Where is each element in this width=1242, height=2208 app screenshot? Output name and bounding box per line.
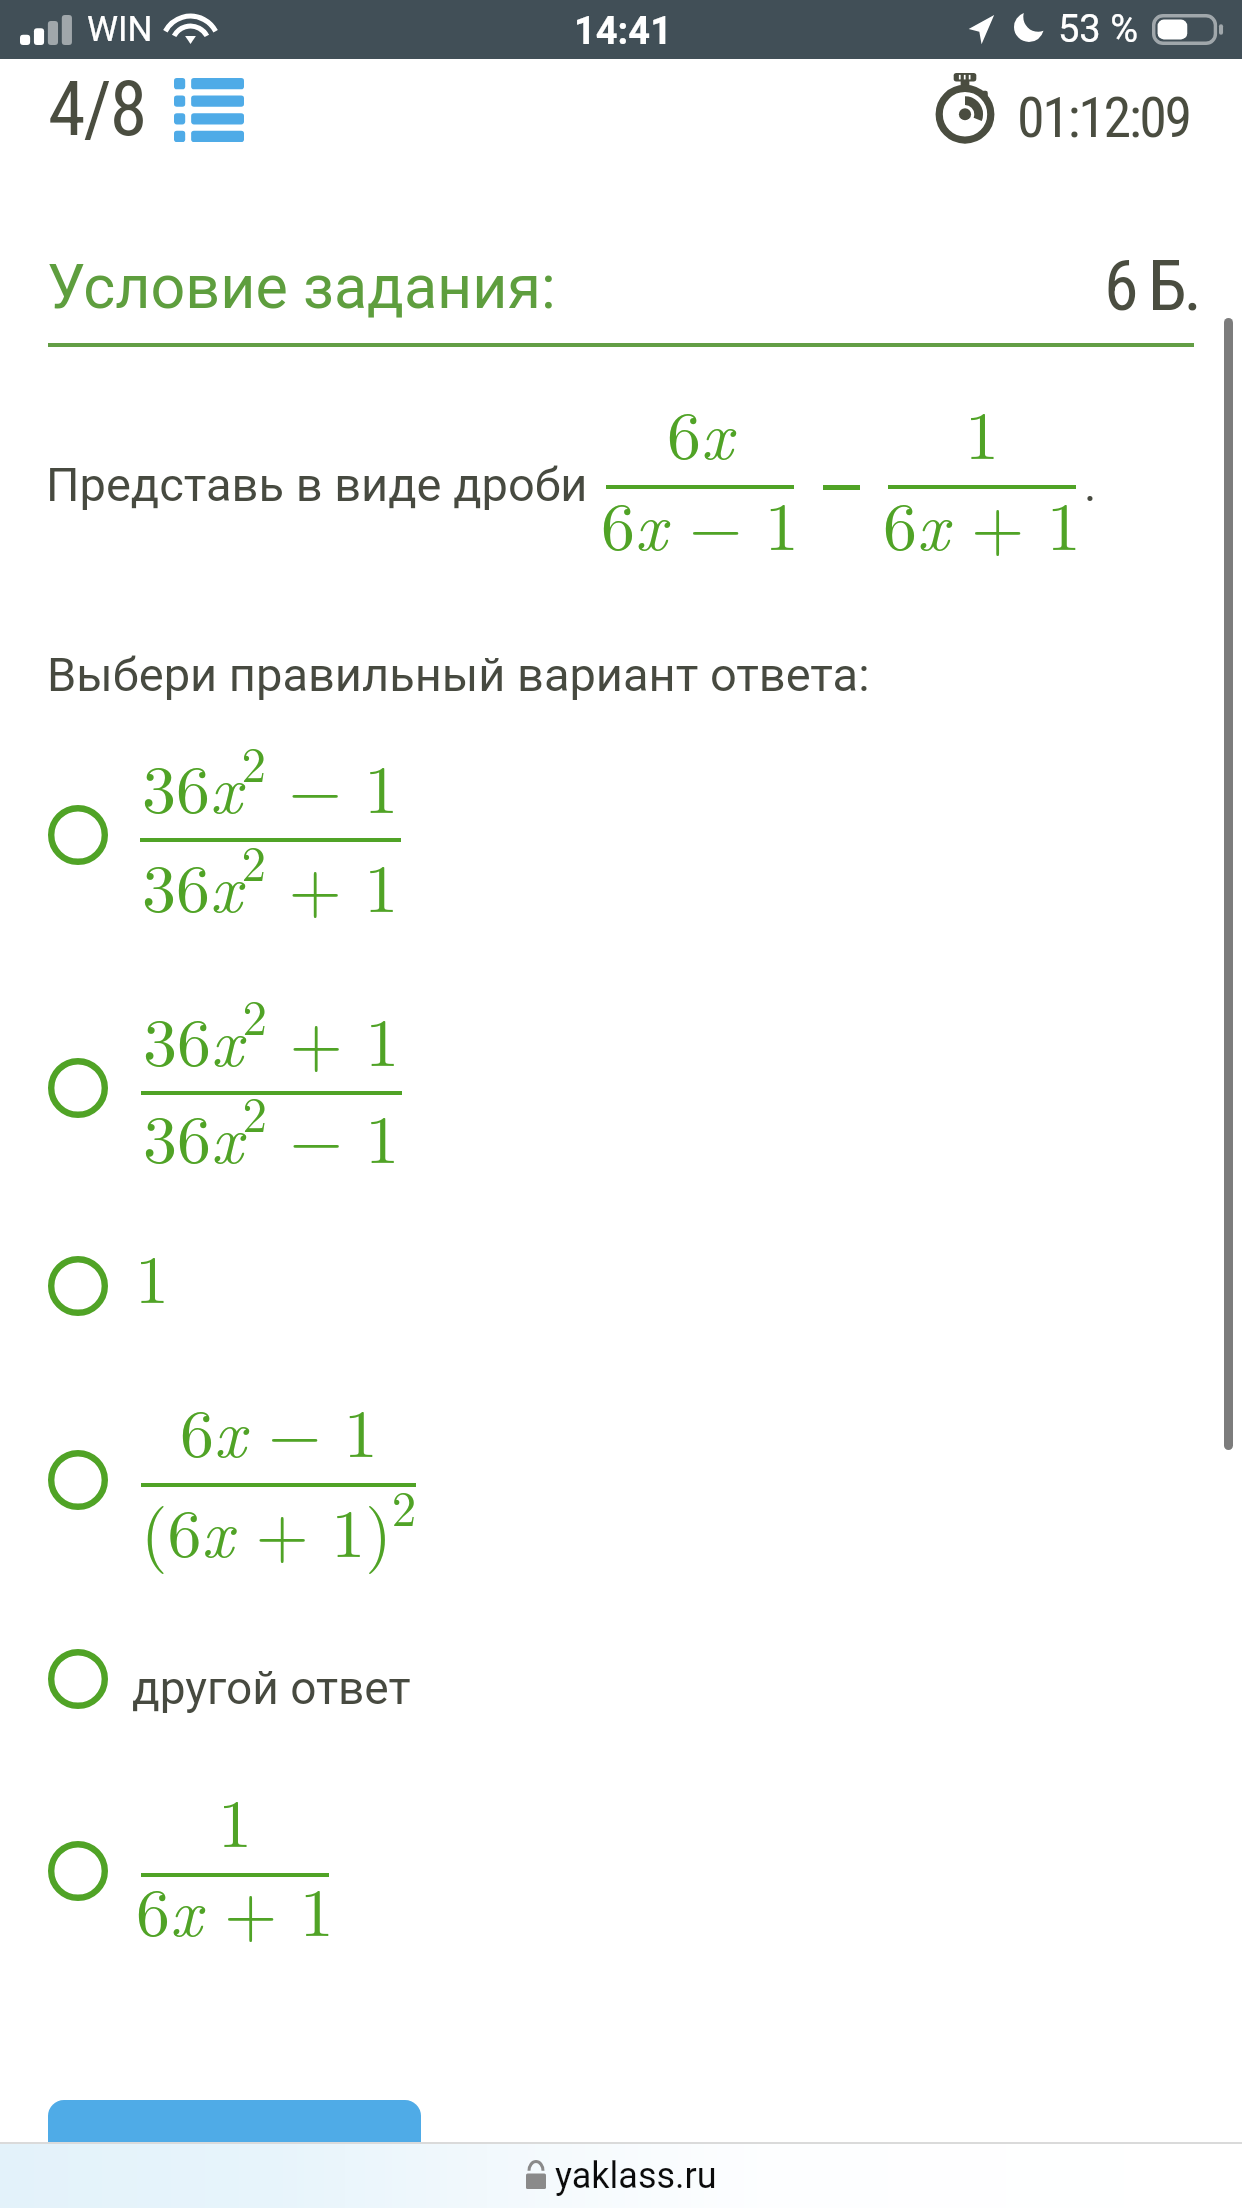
other: Timer [936, 73, 994, 140]
staticText: 14:41 [574, 9, 672, 54]
staticText: 6x [667, 382, 733, 478]
staticText: . [1084, 457, 1097, 512]
button[interactable]: Task list [174, 78, 244, 142]
button[interactable]: Ответить [48, 2100, 421, 2208]
button[interactable]: Вариант ответа 2 [40, 995, 1200, 1175]
staticText: 36x2 − 1 [142, 727, 399, 832]
staticText: 53 % [1058, 7, 1138, 52]
staticText: 1 [965, 382, 1000, 478]
button[interactable]: Progress [48, 64, 146, 153]
button[interactable]: другой ответ [40, 1645, 1200, 1735]
staticText: WIN [87, 9, 153, 50]
staticText: Условие задания: [47, 251, 556, 322]
staticText: Выбери правильный вариант ответа: [47, 647, 870, 702]
button[interactable]: Вариант ответа 3 [40, 1240, 1200, 1330]
staticText: 4/8 [48, 64, 146, 153]
staticText: 6x + 1 [136, 1859, 334, 1955]
button[interactable]: Вариант ответа 1 [40, 750, 1200, 930]
staticText: 1 [135, 1226, 170, 1322]
staticText: 6 [1104, 245, 1139, 327]
staticText: 6x − 1 [601, 473, 799, 569]
staticText: 6x + 1 [883, 473, 1081, 569]
staticText: 36x2 + 1 [142, 826, 399, 931]
staticText: 36x2 − 1 [143, 1077, 400, 1182]
staticText: 6x − 1 [180, 1380, 378, 1476]
button[interactable]: Вариант ответа 6 [40, 1790, 1200, 1955]
staticText: другой ответ [132, 1661, 411, 1715]
staticText: (6x + 1)2 [141, 1471, 417, 1576]
button[interactable]: Address bar yaklass.ru [0, 2144, 1242, 2208]
staticText: 1 [218, 1770, 253, 1866]
staticText: Б. [1148, 245, 1199, 327]
button[interactable]: Вариант ответа 4 [40, 1395, 1200, 1580]
staticText: 36x2 + 1 [143, 980, 400, 1085]
staticText: yaklass.ru [555, 2155, 717, 2197]
staticText: Представь в виде дроби [46, 457, 588, 512]
staticText: 01:12:09 [1017, 85, 1190, 151]
